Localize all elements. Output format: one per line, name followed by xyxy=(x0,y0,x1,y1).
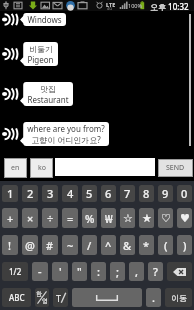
staticText: / xyxy=(87,238,92,253)
button[interactable]: ♥ xyxy=(177,208,192,228)
button[interactable]: SEND xyxy=(159,160,192,176)
button[interactable]: ) xyxy=(177,235,192,255)
staticText: 5 xyxy=(86,186,93,201)
staticText: ☆ xyxy=(123,212,133,225)
button[interactable]: 0 xyxy=(177,185,192,202)
staticText: 비둘기 xyxy=(29,44,53,54)
button[interactable]: 6 xyxy=(101,185,116,202)
button[interactable]: 3 xyxy=(42,185,58,202)
button[interactable]: ♡ xyxy=(158,208,173,228)
staticText: @ xyxy=(25,238,35,253)
button[interactable]: 5 xyxy=(82,185,97,202)
staticText: 4 xyxy=(67,186,74,201)
button[interactable]: & xyxy=(120,235,135,255)
staticText: ♥ xyxy=(180,212,190,225)
button[interactable]: " xyxy=(72,262,87,281)
button[interactable]: / xyxy=(82,235,97,255)
staticText: ÷ xyxy=(47,211,54,226)
staticText: 9 xyxy=(162,186,169,201)
button[interactable]: ko xyxy=(31,159,52,177)
button[interactable]: , xyxy=(129,262,144,281)
staticText: 영 xyxy=(42,297,48,305)
staticText: 0 xyxy=(181,186,188,201)
staticText: Pigeon xyxy=(27,54,54,65)
staticText: 6 xyxy=(105,186,112,201)
staticText: ~ xyxy=(67,238,74,253)
staticText: where are you from? xyxy=(27,123,105,134)
staticText: 1 xyxy=(7,186,14,201)
staticText: " xyxy=(77,264,82,279)
button[interactable]: 9 xyxy=(158,185,173,202)
button[interactable]: ABC xyxy=(2,288,31,307)
button[interactable]: 이동 xyxy=(165,288,192,307)
button[interactable]: Handwriting xyxy=(53,288,68,307)
button[interactable]: where are you from? xyxy=(20,122,109,146)
staticText: 2 xyxy=(27,186,34,201)
button[interactable]: 2 xyxy=(22,185,38,202)
button[interactable]: ; xyxy=(110,262,125,281)
button[interactable]: . xyxy=(146,288,161,307)
button[interactable]: ^ xyxy=(101,235,116,255)
button[interactable]: : xyxy=(91,262,106,281)
staticText: ko xyxy=(38,163,46,173)
button[interactable]: Space xyxy=(72,288,142,307)
staticText: % xyxy=(85,211,95,226)
button[interactable]: × xyxy=(22,208,38,228)
button[interactable]: ☆ xyxy=(120,208,135,228)
button[interactable]: ' xyxy=(52,262,68,281)
staticText: LTE xyxy=(106,1,116,8)
button[interactable]: ★ xyxy=(139,208,154,228)
button[interactable]: 1/2 xyxy=(2,262,28,281)
staticText: ? xyxy=(153,264,158,279)
staticText: Restaurant xyxy=(27,94,69,105)
staticText: 고향이 어디인가요? xyxy=(31,134,101,145)
staticText: 4G xyxy=(107,6,113,11)
staticText: 1/2 xyxy=(9,266,22,277)
staticText: * xyxy=(143,238,150,253)
button[interactable]: 8 xyxy=(139,185,154,202)
staticText: 이동 xyxy=(171,293,187,303)
staticText: SEND xyxy=(166,163,185,173)
staticText: × xyxy=(27,211,34,226)
button[interactable]: @ xyxy=(22,235,38,255)
staticText: ( xyxy=(164,238,168,253)
staticText: ♡ xyxy=(161,212,171,225)
button[interactable]: 1 xyxy=(2,185,18,202)
staticText: ^ xyxy=(105,238,112,253)
button[interactable]: ~ xyxy=(62,235,78,255)
button[interactable]: 맛집 xyxy=(20,82,73,106)
button[interactable]: 4 xyxy=(62,185,78,202)
button[interactable]: ! xyxy=(2,235,18,255)
staticText: ! xyxy=(8,238,12,253)
staticText: - xyxy=(38,264,42,279)
button[interactable]: - xyxy=(32,262,48,281)
staticText: , xyxy=(135,264,139,279)
staticText: 오후 10:32 xyxy=(150,1,189,12)
staticText: 100% xyxy=(128,2,143,9)
button[interactable]: + xyxy=(2,208,18,228)
staticText: & xyxy=(123,238,132,253)
staticText: 3 xyxy=(47,186,54,201)
button[interactable]: ÷ xyxy=(42,208,58,228)
button[interactable]: ₩ xyxy=(101,208,116,228)
button[interactable]: Backspace xyxy=(167,262,192,281)
staticText: T xyxy=(56,292,62,304)
button[interactable]: ( xyxy=(158,235,173,255)
button[interactable]: = xyxy=(62,208,78,228)
button[interactable]: 비둘기 xyxy=(20,42,58,66)
staticText: : xyxy=(97,264,100,279)
button[interactable]: * xyxy=(139,235,154,255)
button[interactable]: en xyxy=(5,159,26,177)
staticText: 맛집 xyxy=(40,84,56,94)
staticText: ₩ xyxy=(105,211,113,226)
button[interactable]: # xyxy=(42,235,58,255)
button[interactable]: Windows xyxy=(20,13,66,26)
staticText: ; xyxy=(116,264,120,279)
button[interactable]: ? xyxy=(148,262,163,281)
button[interactable]: Korean English toggle xyxy=(35,288,49,307)
staticText: ) xyxy=(183,238,187,253)
staticText: 7 xyxy=(124,186,131,201)
button[interactable]: % xyxy=(82,208,97,228)
button[interactable]: 7 xyxy=(120,185,135,202)
